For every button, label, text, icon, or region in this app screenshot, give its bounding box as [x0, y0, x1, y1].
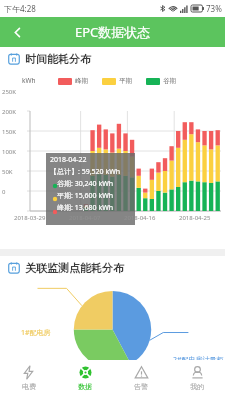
staticText: 谷期 — [163, 77, 176, 85]
button[interactable]: 电费 — [0, 360, 57, 400]
staticText: 峰期 — [75, 77, 88, 85]
staticText: 150K — [2, 128, 17, 134]
staticText: 2018-04-16 — [124, 214, 156, 222]
staticText: 告警 — [134, 382, 148, 391]
staticText: 电费 — [22, 382, 36, 391]
button[interactable]: 告警 — [113, 360, 169, 400]
staticText: 数据 — [78, 382, 92, 391]
staticText: 200K — [2, 108, 17, 114]
button[interactable]: 我的 — [169, 360, 225, 400]
staticText: 平期: 15,600 kWh — [57, 191, 113, 201]
staticText: 100K — [2, 148, 17, 154]
staticText: 时间能耗分布 — [25, 52, 91, 66]
staticText: 73% — [206, 3, 222, 14]
staticText: 2#配电房计量柜 — [173, 355, 224, 360]
staticText: 0 — [2, 188, 6, 194]
staticText: 我的 — [190, 382, 204, 391]
staticText: 250K — [2, 88, 17, 94]
staticText: 2018-04-22 — [50, 155, 87, 165]
staticText: 2018-04-25 — [179, 214, 211, 222]
staticText: EPC数据状态 — [75, 23, 151, 41]
staticText: 1#配电房 — [21, 328, 51, 338]
staticText: 关联监测点能耗分布 — [25, 261, 124, 275]
staticText: 下午4:28 — [4, 3, 36, 14]
staticText: kWh — [22, 76, 36, 85]
staticText: 50K — [2, 168, 13, 174]
staticText: 【总计】: 59,520 kWh — [50, 167, 120, 177]
staticText: 谷期: 30,240 kWh — [57, 179, 113, 189]
staticText: 峰期: 13,680 kWh — [57, 203, 113, 213]
staticText: 平期 — [119, 77, 132, 85]
button[interactable]: 返回 — [0, 17, 34, 47]
button[interactable]: 数据 — [57, 360, 113, 400]
staticText: 2018-03-29 — [14, 214, 46, 222]
